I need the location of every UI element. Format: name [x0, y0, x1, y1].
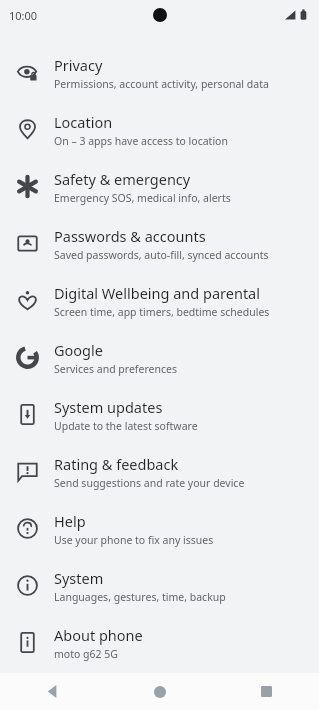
button[interactable]: Digital Wellbeing and parental controls: [0, 272, 319, 329]
button[interactable]: Home: [107, 673, 213, 710]
button[interactable]: Rating & feedback: [0, 443, 319, 500]
staticText: Permissions, account activity, personal …: [54, 77, 269, 91]
staticText: System: [54, 568, 104, 588]
button[interactable]: Help: [0, 500, 319, 557]
staticText: Send suggestions and rate your device: [54, 476, 245, 490]
staticText: Services and preferences: [54, 362, 177, 376]
staticText: Update to the latest software: [54, 419, 198, 433]
staticText: Rating & feedback: [54, 454, 179, 474]
staticText: On – 3 apps have access to location: [54, 134, 228, 148]
button[interactable]: System updates: [0, 386, 319, 443]
staticText: moto g62 5G: [54, 647, 118, 661]
button[interactable]: Safety & emergency: [0, 158, 319, 215]
staticText: Help: [54, 511, 86, 531]
button[interactable]: About phone: [0, 614, 319, 671]
staticText: 10:00: [9, 8, 38, 23]
staticText: Safety & emergency: [54, 169, 191, 189]
staticText: Digital Wellbeing and parental controls: [54, 283, 309, 303]
staticText: System updates: [54, 397, 163, 417]
button[interactable]: Location: [0, 101, 319, 158]
staticText: Privacy: [54, 55, 103, 75]
staticText: Emergency SOS, medical info, alerts: [54, 191, 231, 205]
staticText: Google: [54, 340, 103, 360]
button[interactable]: Back: [0, 673, 107, 710]
staticText: Passwords & accounts: [54, 226, 206, 246]
staticText: Languages, gestures, time, backup: [54, 590, 226, 604]
staticText: Screen time, app timers, bedtime schedul…: [54, 305, 270, 319]
button[interactable]: Privacy: [0, 44, 319, 101]
staticText: Location: [54, 112, 113, 132]
button[interactable]: System: [0, 557, 319, 614]
staticText: Saved passwords, auto-fill, synced accou…: [54, 248, 269, 262]
button[interactable]: Passwords & accounts: [0, 215, 319, 272]
staticText: Use your phone to fix any issues: [54, 533, 214, 547]
button[interactable]: Recents: [213, 673, 319, 710]
button[interactable]: Google: [0, 329, 319, 386]
staticText: About phone: [54, 625, 143, 645]
